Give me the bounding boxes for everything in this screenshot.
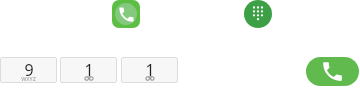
staticText: 9: [24, 59, 34, 81]
button[interactable]: Call: [306, 57, 359, 86]
button[interactable]: 9: [0, 57, 57, 83]
button[interactable]: Phone: [112, 0, 140, 28]
button[interactable]: 1: [60, 57, 117, 83]
staticText: 1: [84, 59, 94, 81]
staticText: WXYZ: [21, 75, 36, 82]
staticText: 1: [145, 59, 155, 81]
button[interactable]: 1: [121, 57, 178, 83]
button[interactable]: Dialpad: [244, 0, 272, 28]
